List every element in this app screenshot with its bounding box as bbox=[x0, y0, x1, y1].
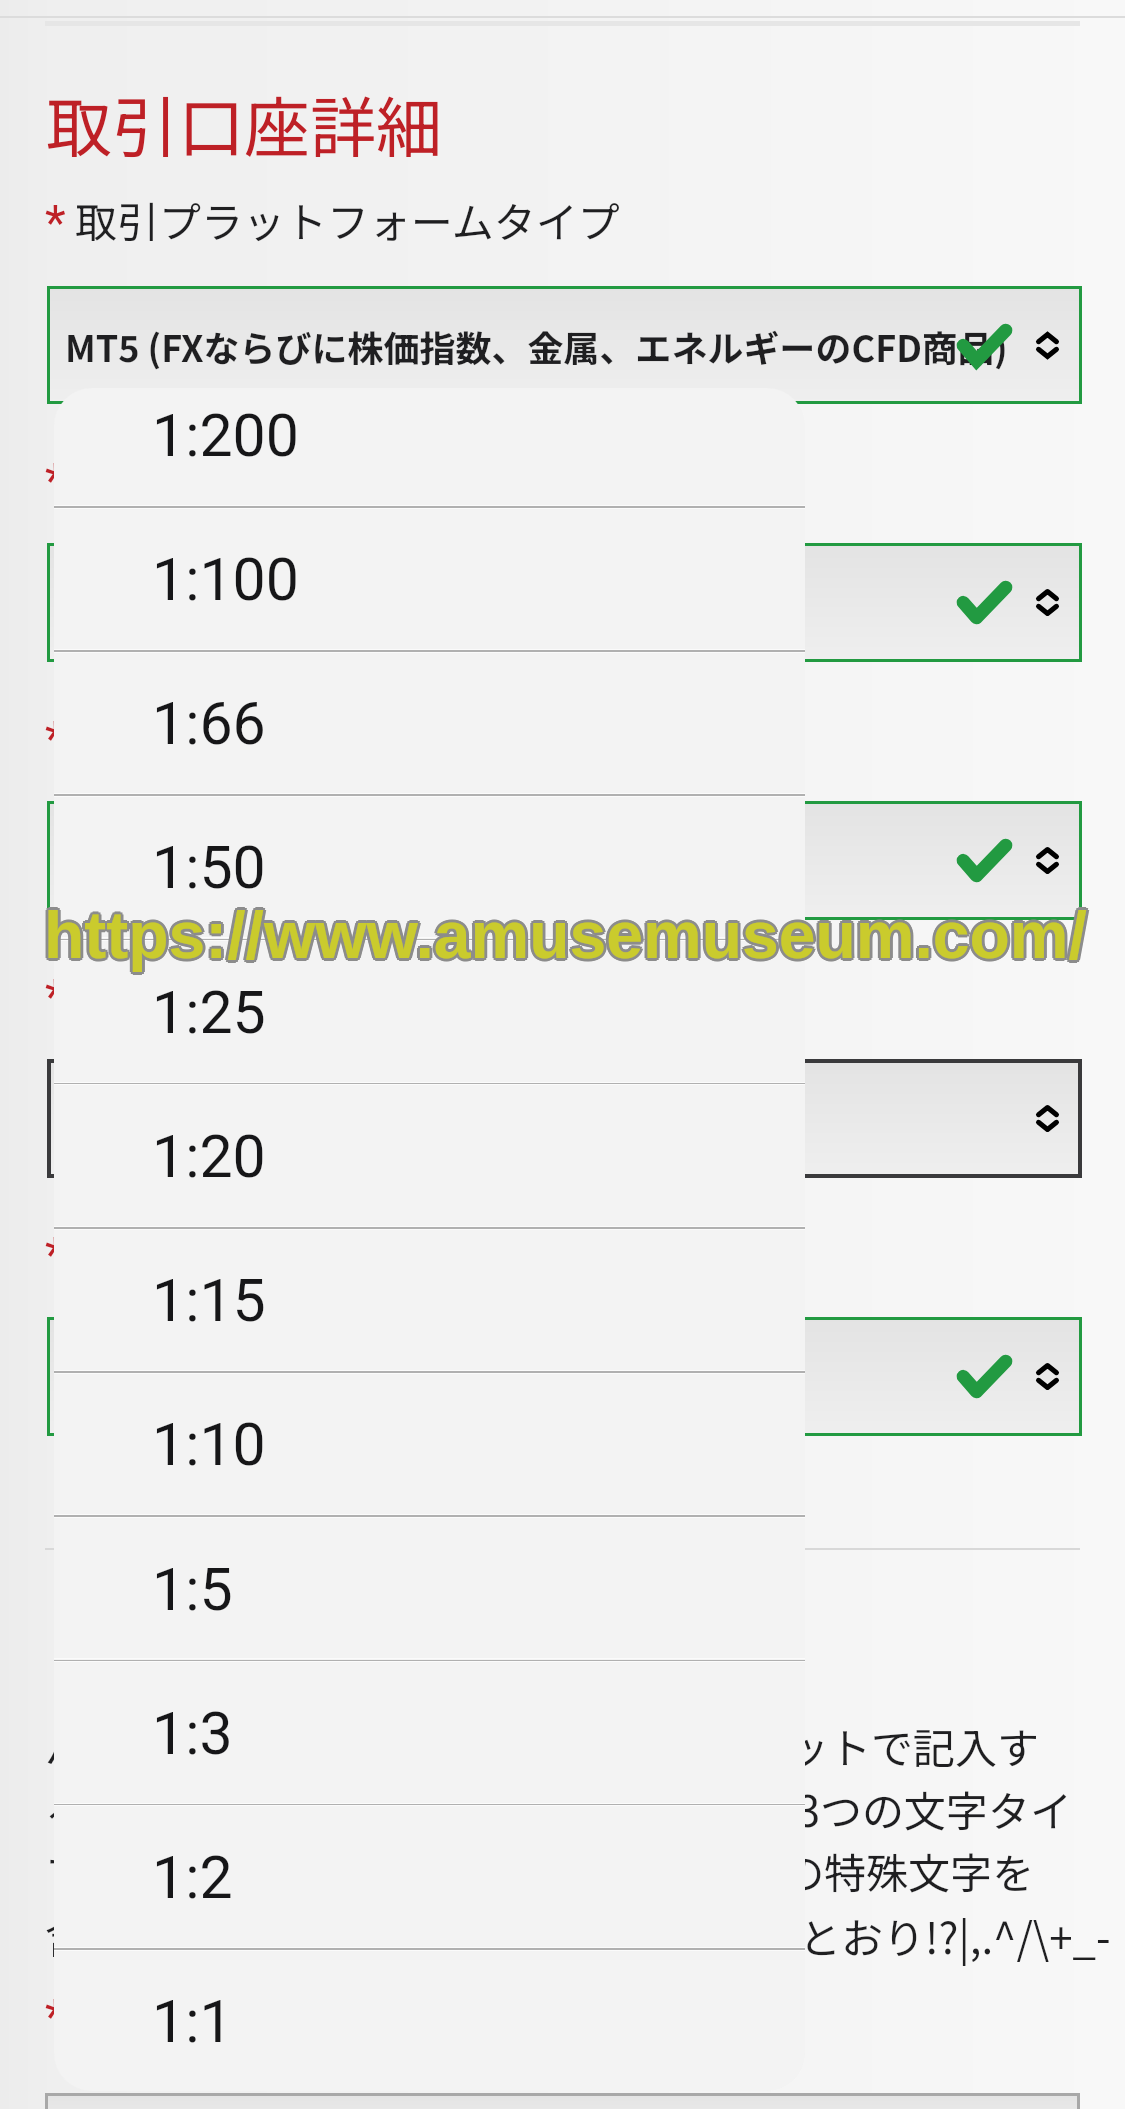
button[interactable]: レバレッジ bbox=[47, 1059, 1082, 1178]
staticText: MT5 (FXならびに株価指数、金属、エネルギーのCFD商品) bbox=[65, 320, 1008, 372]
button[interactable]: 1:15 bbox=[54, 1228, 805, 1372]
staticText: 1:20 bbox=[152, 1122, 266, 1191]
staticText: 含めてください。使用できる記号は次のとおり!?|,.^/\+_- bbox=[45, 1905, 1125, 1966]
button[interactable]: 口座タイプ bbox=[47, 543, 1082, 662]
button[interactable]: 口座通貨 bbox=[47, 801, 1082, 920]
staticText: 1:15 bbox=[152, 1266, 266, 1335]
button[interactable]: 1:200 bbox=[54, 388, 805, 507]
button[interactable]: パスワード入力欄 bbox=[45, 2093, 1080, 2109]
button[interactable]: 1:100 bbox=[54, 507, 805, 651]
staticText: 1:50 bbox=[152, 833, 266, 902]
button[interactable]: ボーナス bbox=[47, 1317, 1082, 1436]
button[interactable]: 1:2 bbox=[54, 1805, 805, 1949]
button[interactable]: 取引プラットフォームタイプ bbox=[47, 286, 1082, 404]
staticText: https://www.amusemuseum.com/ bbox=[46, 896, 1125, 970]
staticText: 1:10 bbox=[152, 1410, 266, 1479]
staticText: * bbox=[45, 1988, 1125, 2044]
button[interactable]: 1:66 bbox=[54, 651, 805, 795]
staticText: https://www.amusemuseum.com/ bbox=[44, 898, 1125, 972]
button[interactable]: 1:10 bbox=[54, 1372, 805, 1516]
staticText: 1:2 bbox=[152, 1843, 233, 1912]
staticText: 1:1 bbox=[152, 1987, 233, 2056]
staticText: 取引プラットフォームタイプ bbox=[75, 189, 1125, 250]
button[interactable]: 1:5 bbox=[54, 1517, 805, 1661]
staticText: 1:25 bbox=[152, 978, 266, 1047]
staticText: 取引口座詳細 bbox=[46, 75, 1125, 171]
staticText: https://www.amusemuseum.com/ bbox=[42, 900, 1125, 974]
staticText: https://www.amusemuseum.com/ bbox=[42, 896, 1125, 970]
staticText: https://www.amusemuseum.com/ bbox=[47, 898, 1125, 972]
staticText: 1:5 bbox=[152, 1555, 233, 1624]
staticText: パスワードは8～15文字の英数字等のセットで記入す bbox=[45, 1715, 1125, 1776]
button[interactable]: 1:1 bbox=[54, 1949, 805, 2091]
staticText: 1:100 bbox=[152, 545, 299, 614]
staticText: https://www.amusemuseum.com/ bbox=[46, 900, 1125, 974]
staticText: * bbox=[45, 452, 1125, 508]
staticText: https://www.amusemuseum.com/ bbox=[41, 898, 1125, 972]
button[interactable]: 1:50 bbox=[54, 795, 805, 939]
staticText: * bbox=[45, 1226, 1125, 1282]
staticText: * bbox=[45, 968, 1125, 1024]
button[interactable]: 1:3 bbox=[54, 1661, 805, 1805]
staticText: https://www.amusemuseum.com/ bbox=[44, 901, 1125, 975]
staticText: https://www.amusemuseum.com/ bbox=[44, 895, 1125, 969]
staticText: 1:200 bbox=[152, 401, 299, 470]
staticText: 1:66 bbox=[152, 689, 266, 758]
button[interactable]: 1:25 bbox=[54, 940, 805, 1084]
staticText: * bbox=[45, 194, 1125, 250]
staticText: る必要があります。また、次に挙げる、3つの文字タイ bbox=[45, 1778, 1125, 1839]
staticText: プのうち、少なくとも2種類以上の記号の特殊文字を bbox=[45, 1840, 1125, 1901]
button[interactable]: 1:20 bbox=[54, 1084, 805, 1228]
staticText: 1:3 bbox=[152, 1699, 233, 1768]
staticText: * bbox=[45, 710, 1125, 766]
